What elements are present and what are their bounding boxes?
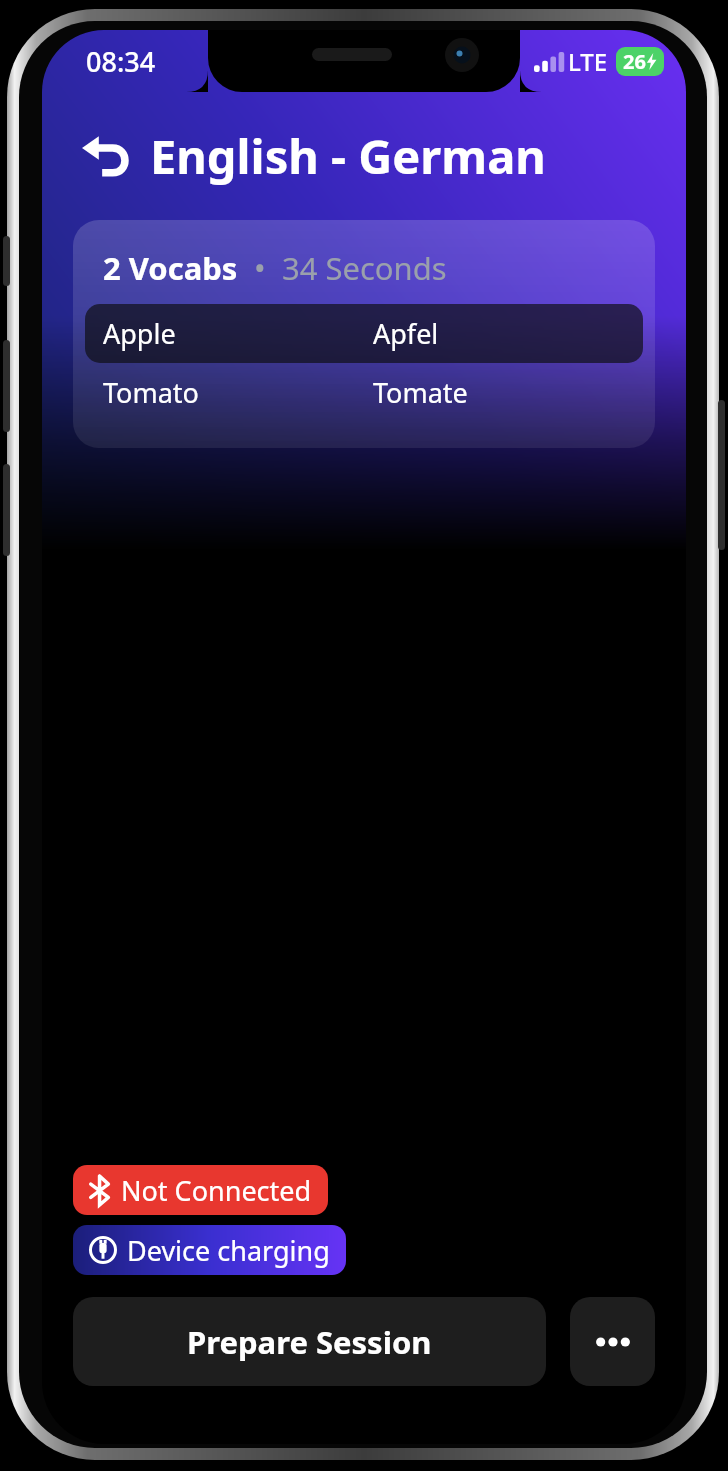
staticText: Device charging	[127, 1232, 330, 1269]
button[interactable]: Prepare Session	[73, 1297, 546, 1386]
button[interactable]: Back	[74, 124, 138, 188]
staticText: Apfel	[373, 315, 439, 352]
staticText: Tomate	[373, 374, 468, 411]
button[interactable]: Tomato	[85, 363, 643, 422]
button[interactable]: More options	[570, 1297, 655, 1386]
staticText: LTE	[568, 45, 608, 78]
staticText: Prepare Session	[187, 1321, 432, 1363]
button[interactable]: Apple	[85, 304, 643, 363]
button[interactable]: Device charging	[73, 1225, 346, 1275]
button[interactable]: Not Connected	[73, 1165, 328, 1215]
staticText: 2 Vocabs	[103, 247, 238, 289]
staticText: 26	[623, 48, 646, 75]
staticText: Not Connected	[121, 1172, 312, 1209]
staticText: English - German	[150, 124, 546, 188]
button[interactable]: 2 Vocabs	[73, 220, 655, 448]
staticText: Tomato	[103, 374, 199, 411]
staticText: • 34 Seconds	[238, 247, 447, 289]
staticText: 08:34	[86, 43, 156, 80]
staticText: Apple	[103, 315, 176, 352]
